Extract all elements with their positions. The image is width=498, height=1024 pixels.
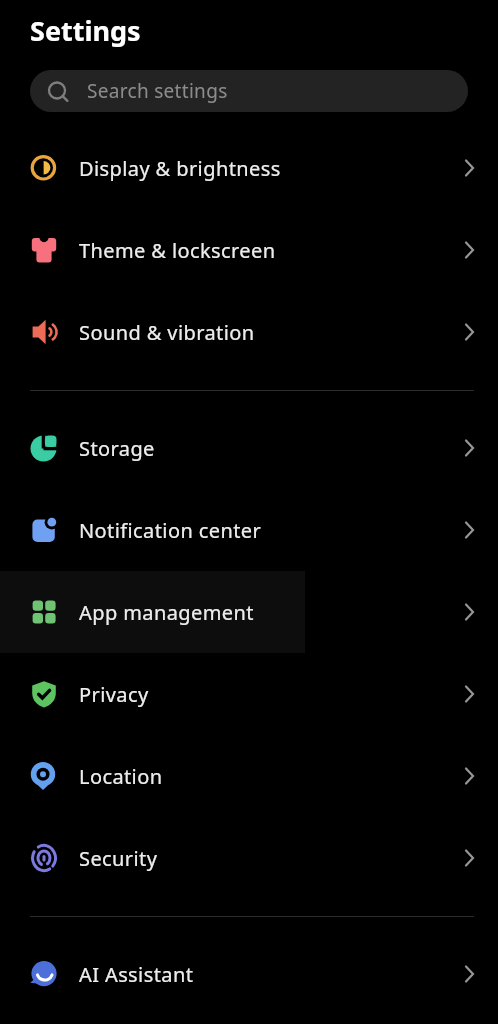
staticText: Theme & lockscreen <box>79 237 276 264</box>
staticText: Security <box>79 845 158 872</box>
button[interactable]: Search settings <box>30 70 468 112</box>
staticText: Notification center <box>79 517 262 544</box>
button[interactable]: Privacy <box>0 653 498 735</box>
staticText: Sound & vibration <box>79 319 255 346</box>
staticText: Display & brightness <box>79 155 281 182</box>
staticText: Settings <box>30 12 141 49</box>
button[interactable]: Sound & vibration <box>0 291 498 373</box>
staticText: Search settings <box>87 78 228 104</box>
staticText: Location <box>79 763 163 790</box>
button[interactable]: Storage <box>0 407 498 489</box>
button[interactable]: Security <box>0 817 498 899</box>
button[interactable]: AI Assistant <box>0 933 498 1015</box>
button[interactable]: Location <box>0 735 498 817</box>
button[interactable]: Theme & lockscreen <box>0 209 498 291</box>
staticText: AI Assistant <box>79 961 194 988</box>
staticText: Privacy <box>79 681 149 708</box>
button[interactable]: App management <box>0 571 498 653</box>
staticText: Storage <box>79 435 155 462</box>
button[interactable]: Notification center <box>0 489 498 571</box>
staticText: App management <box>79 599 254 626</box>
button[interactable]: Display & brightness <box>0 127 498 209</box>
